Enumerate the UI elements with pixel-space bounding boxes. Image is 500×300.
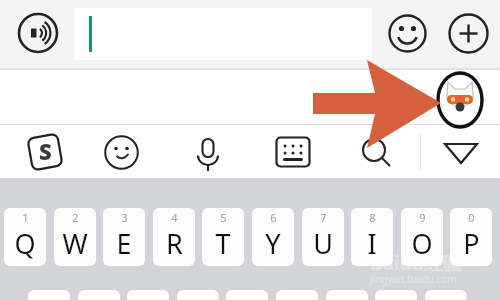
staticText: 0 (468, 210, 475, 225)
staticText: S (39, 136, 52, 166)
button[interactable] (127, 290, 169, 300)
staticText: 8 (369, 210, 376, 225)
staticText: Q (14, 225, 36, 262)
button[interactable] (326, 290, 368, 300)
staticText: U (313, 225, 333, 262)
button[interactable]: Keyboard (275, 136, 311, 168)
button[interactable]: Voice input (190, 134, 226, 172)
button[interactable]: 0 (450, 208, 492, 266)
staticText: 9 (419, 210, 426, 225)
staticText: 2 (72, 210, 79, 225)
button[interactable]: 8 (351, 208, 393, 266)
button[interactable]: 3 (103, 208, 145, 266)
button[interactable] (276, 290, 318, 300)
button[interactable]: Sogou (25, 132, 65, 172)
button[interactable]: 9 (401, 208, 443, 266)
staticText: E (116, 225, 132, 262)
staticText: 7 (320, 210, 327, 225)
button[interactable]: 4 (153, 208, 195, 266)
button[interactable] (177, 290, 219, 300)
staticText: O (411, 225, 433, 262)
staticText: 6 (270, 210, 277, 225)
staticText: I (367, 225, 377, 262)
staticText: Y (265, 225, 281, 262)
staticText: 5 (220, 210, 227, 225)
button[interactable]: 6 (252, 208, 294, 266)
button[interactable]: 2 (54, 208, 96, 266)
button[interactable]: Search (360, 136, 396, 170)
staticText: 3 (121, 210, 128, 225)
button[interactable] (28, 290, 70, 300)
staticText: 4 (171, 210, 178, 225)
staticText: T (215, 225, 231, 262)
button[interactable]: 1 (4, 208, 46, 266)
staticText: P (463, 225, 480, 262)
button[interactable] (425, 290, 467, 300)
button[interactable] (75, 8, 372, 60)
staticText: jingyan.baidu.com (370, 272, 457, 286)
button[interactable] (226, 290, 268, 300)
button[interactable]: 5 (202, 208, 244, 266)
staticText: R (166, 225, 183, 262)
button[interactable]: Stickers (104, 135, 139, 170)
button[interactable]: More (448, 13, 489, 54)
staticText: Baidu经验 (370, 250, 463, 276)
button[interactable]: AI assistant (436, 72, 484, 128)
button[interactable] (78, 290, 120, 300)
button[interactable]: Hide keyboard (443, 140, 479, 166)
staticText: 1 (22, 210, 29, 225)
button[interactable]: 7 (302, 208, 344, 266)
button[interactable]: Emoji (388, 14, 427, 53)
staticText: W (62, 225, 88, 262)
button[interactable] (375, 290, 417, 300)
button[interactable]: Voice message (17, 12, 59, 54)
